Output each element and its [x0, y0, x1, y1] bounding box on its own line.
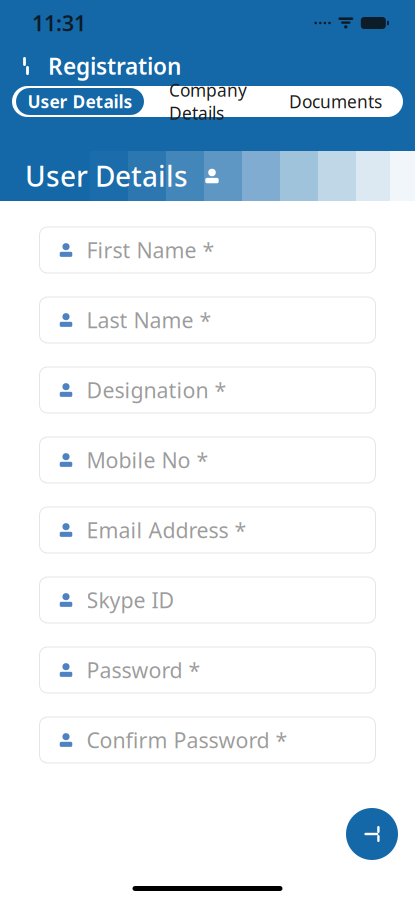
button[interactable]: Company Details [144, 88, 272, 115]
button[interactable]: Password * [39, 647, 375, 693]
staticText: 11:31 [32, 9, 86, 37]
staticText: Designation * [86, 376, 226, 404]
button[interactable]: Documents [272, 88, 399, 115]
staticText: Password * [86, 656, 200, 684]
button[interactable]: Email Address * [39, 507, 375, 553]
staticText: Confirm Password * [86, 726, 287, 754]
staticText: Email Address * [86, 516, 246, 544]
button[interactable]: Mobile No * [39, 437, 375, 483]
button[interactable]: Last Name * [39, 297, 375, 343]
staticText: Mobile No * [86, 446, 208, 474]
button[interactable]: Skype ID [39, 577, 375, 623]
button[interactable]: Designation * [39, 367, 375, 413]
button[interactable]: User Details [16, 88, 144, 115]
staticText: User Details [25, 157, 188, 195]
staticText: Documents [289, 90, 382, 113]
staticText: Registration [48, 51, 181, 81]
staticText: Company Details [169, 78, 247, 124]
button[interactable]: First Name * [39, 227, 375, 273]
staticText: Skype ID [86, 586, 174, 614]
staticText: First Name * [86, 236, 214, 264]
staticText: User Details [27, 90, 132, 113]
button[interactable]: Next [346, 808, 398, 860]
staticText: Last Name * [86, 306, 211, 334]
button[interactable]: Confirm Password * [39, 717, 375, 763]
button[interactable]: Back [10, 50, 42, 82]
